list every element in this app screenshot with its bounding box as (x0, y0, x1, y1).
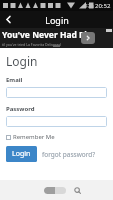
button[interactable]: You've Never Had Piz (0, 28, 113, 48)
button[interactable]: Back (0, 11, 17, 28)
button[interactable]: Search (73, 186, 81, 194)
button[interactable]: Login (6, 146, 37, 162)
staticText: Remember Me (13, 133, 55, 141)
staticText: You've Never Had Piz (2, 29, 92, 41)
button[interactable] (6, 87, 107, 98)
button[interactable]: Home (44, 187, 66, 194)
staticText: Password (6, 105, 35, 113)
staticText: Email (6, 76, 23, 84)
button[interactable] (6, 116, 107, 127)
staticText: til you've tried La Favorita Delivered (2, 42, 61, 47)
button[interactable]: Remember Me (6, 133, 55, 141)
staticText: Login (12, 149, 31, 159)
staticText: Login (6, 53, 38, 69)
staticText: 20:52 (95, 2, 111, 10)
staticText: forgot password? (42, 150, 96, 159)
staticText: 47% (85, 3, 94, 9)
button[interactable]: forgot password? (42, 147, 96, 162)
button[interactable]: Open ad (81, 32, 95, 44)
staticText: Login (45, 14, 69, 26)
